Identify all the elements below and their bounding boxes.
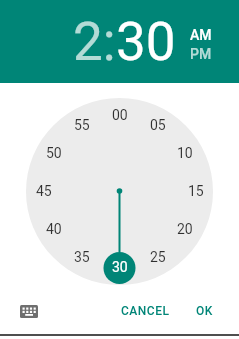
button[interactable]: 45 xyxy=(22,180,66,202)
button[interactable]: 35 xyxy=(60,246,104,268)
staticText: 45 xyxy=(36,183,52,199)
button[interactable]: 05 xyxy=(136,114,180,136)
button[interactable]: 55 xyxy=(60,114,104,136)
staticText: 10 xyxy=(177,145,193,161)
button[interactable]: CANCEL xyxy=(116,299,174,323)
button[interactable]: 2: xyxy=(73,11,116,73)
staticText: 05 xyxy=(150,117,166,133)
staticText: 35 xyxy=(74,249,90,265)
button[interactable]: AM xyxy=(190,27,212,43)
staticText: 25 xyxy=(150,249,166,265)
button[interactable]: OK xyxy=(188,299,220,323)
button[interactable]: 30 xyxy=(98,256,142,278)
button[interactable]: 00 xyxy=(98,104,142,126)
staticText: OK xyxy=(196,304,213,318)
button[interactable]: 50 xyxy=(32,142,76,164)
button[interactable]: 30 xyxy=(116,11,176,73)
button[interactable] xyxy=(14,299,44,323)
staticText: 30 xyxy=(112,259,128,275)
staticText: 00 xyxy=(112,107,128,123)
button[interactable]: 20 xyxy=(163,218,207,240)
staticText: CANCEL xyxy=(121,304,170,318)
staticText: 20 xyxy=(177,221,193,237)
staticText: 50 xyxy=(46,145,62,161)
staticText: 40 xyxy=(46,221,62,237)
staticText: 55 xyxy=(74,117,90,133)
button[interactable]: 40 xyxy=(32,218,76,240)
button[interactable]: 15 xyxy=(174,180,218,202)
button[interactable]: 25 xyxy=(136,246,180,268)
staticText: 15 xyxy=(188,183,204,199)
button[interactable]: 10 xyxy=(163,142,207,164)
button[interactable]: PM xyxy=(190,46,212,62)
